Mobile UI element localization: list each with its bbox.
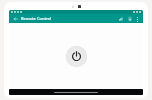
button[interactable]: Power (66, 46, 87, 67)
button[interactable]: Back (12, 15, 19, 22)
staticText: Remote Control (21, 16, 52, 21)
button[interactable]: Device status (126, 15, 133, 22)
button[interactable]: Signal (117, 15, 124, 22)
button[interactable]: More options (134, 16, 140, 22)
